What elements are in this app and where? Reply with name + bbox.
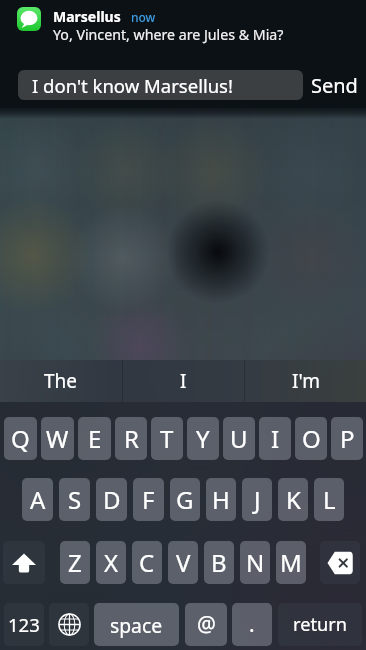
- staticText: R: [124, 422, 139, 455]
- button[interactable]: J: [242, 478, 272, 521]
- button[interactable]: F: [133, 478, 164, 521]
- staticText: U: [230, 422, 248, 455]
- staticText: D: [103, 483, 121, 516]
- button[interactable]: R: [115, 417, 147, 460]
- button[interactable]: K: [278, 478, 308, 521]
- staticText: O: [302, 422, 321, 455]
- button[interactable]: The: [0, 360, 122, 402]
- button[interactable]: I don't know Marsellus!: [18, 70, 303, 100]
- staticText: J: [254, 483, 261, 516]
- staticText: return: [293, 612, 347, 637]
- button[interactable]: P: [331, 417, 363, 460]
- button[interactable]: T: [151, 417, 183, 460]
- button[interactable]: Y: [187, 417, 219, 460]
- button[interactable]: 123: [4, 603, 44, 646]
- button[interactable]: Q: [4, 417, 37, 460]
- button[interactable]: @: [185, 603, 227, 646]
- staticText: Send: [311, 72, 358, 99]
- button[interactable]: E: [78, 417, 111, 460]
- staticText: I: [271, 422, 280, 455]
- button[interactable]: W: [41, 417, 74, 460]
- staticText: Y: [196, 422, 210, 455]
- button[interactable]: U: [223, 417, 255, 460]
- button[interactable]: Change language: [49, 603, 89, 646]
- button[interactable]: Backspace: [320, 541, 360, 584]
- staticText: H: [212, 483, 230, 516]
- button[interactable]: return: [278, 603, 362, 646]
- staticText: Yo, Vincent, where are Jules & Mia?: [53, 25, 284, 44]
- staticText: F: [142, 483, 155, 516]
- staticText: K: [286, 483, 301, 516]
- staticText: I don't know Marsellus!: [32, 73, 233, 98]
- staticText: P: [340, 422, 355, 455]
- button[interactable]: S: [59, 478, 90, 521]
- button[interactable]: L: [314, 478, 344, 521]
- staticText: W: [46, 422, 69, 455]
- staticText: I'm: [292, 368, 320, 394]
- staticText: now: [131, 9, 156, 25]
- button[interactable]: I: [123, 360, 244, 402]
- button[interactable]: M: [276, 541, 306, 584]
- button[interactable]: I: [259, 417, 291, 460]
- button[interactable]: Shift: [3, 541, 45, 584]
- staticText: Q: [11, 422, 30, 455]
- button[interactable]: Z: [60, 541, 90, 584]
- staticText: S: [68, 483, 82, 516]
- button[interactable]: B: [204, 541, 234, 584]
- button[interactable]: C: [132, 541, 162, 584]
- staticText: T: [160, 422, 174, 455]
- staticText: X: [104, 546, 119, 579]
- button[interactable]: N: [240, 541, 270, 584]
- button[interactable]: X: [96, 541, 126, 584]
- staticText: .: [249, 610, 255, 639]
- staticText: 123: [8, 612, 40, 637]
- button[interactable]: space: [94, 603, 179, 646]
- staticText: Z: [68, 546, 82, 579]
- button[interactable]: D: [96, 478, 127, 521]
- staticText: B: [211, 546, 227, 579]
- staticText: C: [139, 546, 155, 579]
- button[interactable]: H: [206, 478, 236, 521]
- staticText: N: [246, 546, 265, 579]
- staticText: L: [323, 483, 336, 516]
- staticText: A: [30, 483, 46, 516]
- staticText: V: [176, 546, 191, 579]
- staticText: E: [88, 422, 102, 455]
- button[interactable]: .: [232, 603, 272, 646]
- staticText: I: [180, 368, 187, 394]
- button[interactable]: V: [168, 541, 198, 584]
- staticText: M: [280, 546, 302, 579]
- button[interactable]: A: [22, 478, 53, 521]
- button[interactable]: G: [170, 478, 200, 521]
- button[interactable]: O: [295, 417, 327, 460]
- button[interactable]: I'm: [245, 360, 366, 402]
- button[interactable]: Send: [308, 70, 360, 100]
- staticText: space: [110, 612, 163, 638]
- staticText: The: [44, 368, 78, 394]
- staticText: @: [197, 610, 216, 639]
- staticText: G: [176, 483, 194, 516]
- staticText: Marsellus: [53, 7, 121, 26]
